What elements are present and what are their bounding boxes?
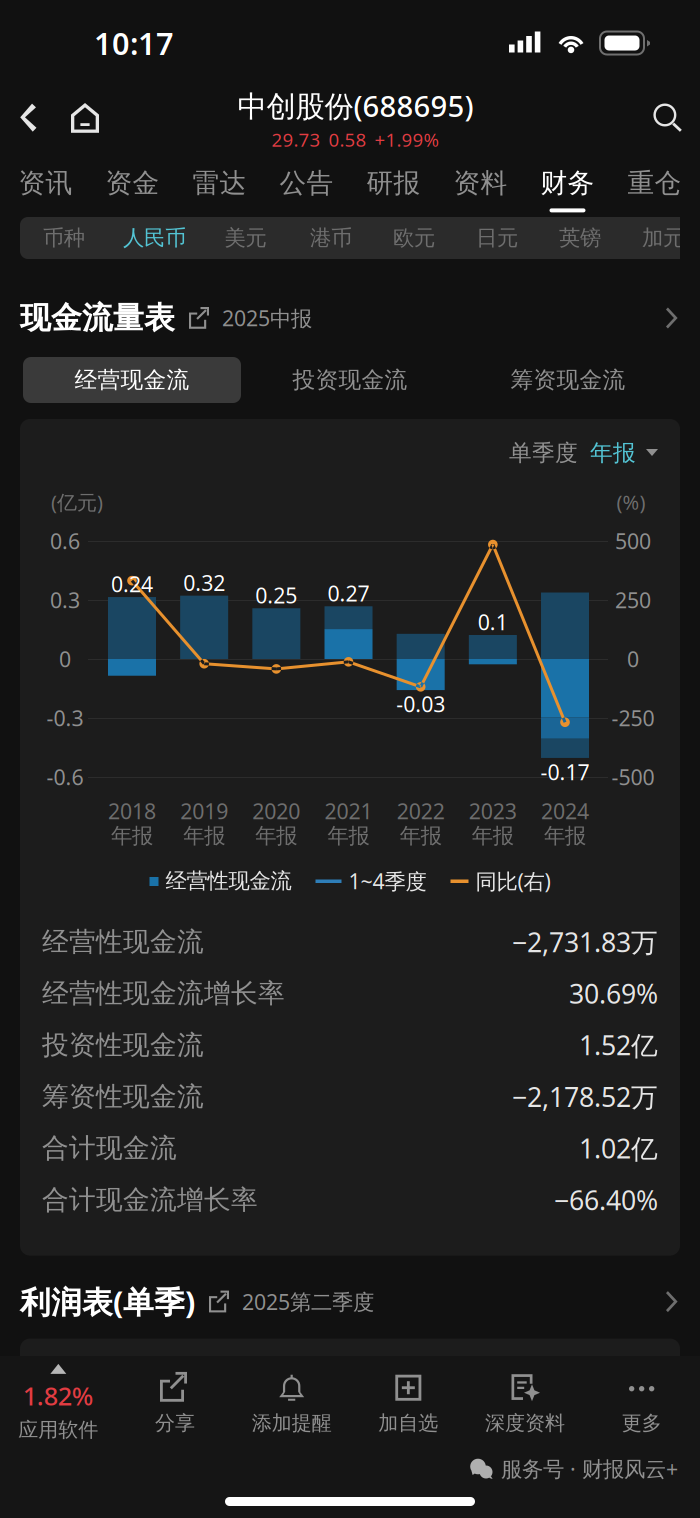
staticText: 经营性现金流: [165, 868, 291, 894]
staticText: 年报: [590, 439, 636, 467]
staticText: 年报: [400, 823, 442, 849]
staticText: 英镑: [559, 225, 601, 251]
button[interactable]: 利润表(单季): [0, 1274, 700, 1330]
staticText: 投资现金流: [292, 366, 407, 394]
staticText: 投资性现金流: [42, 1029, 204, 1061]
staticText: 1.82%: [23, 1379, 94, 1412]
staticText: -0.03: [396, 690, 445, 718]
button[interactable]: 深度资料: [467, 1360, 583, 1446]
staticText: 港币: [310, 225, 352, 251]
button[interactable]: Home: [58, 86, 112, 150]
button[interactable]: Back: [0, 86, 58, 150]
staticText: 服务号 · 财报风云+: [501, 1454, 678, 1483]
staticText: -0.6: [46, 763, 83, 791]
staticText: 人民币: [123, 225, 186, 251]
button[interactable]: 日元: [455, 217, 538, 259]
button[interactable]: 资讯: [2, 150, 89, 217]
staticText: −66.40%: [554, 1182, 658, 1217]
staticText: 0.27: [327, 579, 369, 607]
staticText: -0.3: [46, 704, 83, 732]
button[interactable]: 人民币: [107, 217, 201, 259]
button[interactable]: 港币: [289, 217, 372, 259]
button[interactable]: 加元: [621, 217, 700, 259]
staticText: 500: [615, 527, 651, 555]
staticText: 2025中报: [222, 304, 312, 332]
button[interactable]: 更多: [583, 1360, 700, 1446]
staticText: 0.25: [255, 581, 297, 609]
staticText: 29.73: [271, 127, 320, 152]
button[interactable]: Search: [635, 86, 700, 150]
button[interactable]: 分享: [117, 1360, 233, 1446]
button[interactable]: 经营现金流: [23, 357, 241, 403]
button[interactable]: 加自选: [350, 1360, 467, 1446]
staticText: 美元: [224, 225, 266, 251]
staticText: 年报: [472, 823, 514, 849]
staticText: 添加提醒: [252, 1411, 332, 1435]
button[interactable]: 投资现金流: [241, 357, 459, 403]
staticText: 2021: [324, 797, 372, 825]
staticText: 加自选: [378, 1411, 438, 1435]
staticText: 2020: [252, 797, 300, 825]
staticText: 利润表(单季): [20, 1281, 195, 1322]
staticText: 0: [627, 645, 639, 673]
staticText: 中创股份(688695): [237, 86, 473, 125]
staticText: 0.24: [111, 570, 153, 598]
staticText: 0: [59, 645, 71, 673]
staticText: 年报: [327, 823, 369, 849]
staticText: 2025第二季度: [242, 1287, 374, 1316]
button[interactable]: 添加提醒: [233, 1360, 350, 1446]
button[interactable]: 重仓: [611, 150, 698, 217]
staticText: 2023: [469, 797, 517, 825]
staticText: 年报: [111, 823, 153, 849]
button[interactable]: 1.82%: [0, 1360, 117, 1446]
staticText: 更多: [622, 1411, 662, 1435]
staticText: 深度资料: [485, 1411, 565, 1435]
staticText: 合计现金流: [42, 1132, 177, 1165]
staticText: 0.58: [328, 127, 366, 152]
staticText: 财务: [540, 167, 594, 199]
staticText: −2,731.83万: [512, 924, 658, 959]
staticText: 0.3: [50, 586, 80, 614]
staticText: 单季度: [509, 439, 578, 467]
staticText: 日元: [476, 225, 518, 251]
button[interactable]: 资金: [89, 150, 176, 217]
button[interactable]: 财务: [524, 150, 611, 217]
button[interactable]: 英镑: [538, 217, 621, 259]
staticText: 筹资现金流: [510, 366, 625, 394]
staticText: 雷达: [192, 167, 246, 199]
button[interactable]: 现金流量表: [0, 290, 700, 346]
staticText: 应用软件: [18, 1417, 98, 1442]
staticText: 合计现金流增长率: [42, 1183, 258, 1216]
staticText: 0.1: [478, 608, 508, 636]
staticText: 10:17: [94, 23, 174, 63]
staticText: 1~4季度: [348, 867, 426, 895]
staticText: (亿元): [51, 489, 103, 515]
staticText: 经营性现金流: [42, 925, 204, 958]
staticText: 同比(右): [475, 867, 550, 895]
staticText: 2024: [541, 797, 589, 825]
staticText: 30.69%: [569, 976, 658, 1011]
staticText: −2,178.52万: [512, 1079, 658, 1114]
staticText: -0.17: [540, 758, 589, 786]
button[interactable]: 美元: [201, 217, 289, 259]
button[interactable]: 欧元: [372, 217, 455, 259]
staticText: 分享: [155, 1411, 195, 1435]
button[interactable]: 公告: [263, 150, 350, 217]
staticText: 币种: [43, 225, 85, 251]
staticText: 经营现金流: [74, 366, 189, 394]
staticText: 筹资性现金流: [42, 1080, 204, 1113]
staticText: 0.32: [183, 568, 225, 597]
staticText: 现金流量表: [20, 299, 175, 337]
button[interactable]: 筹资现金流: [459, 357, 677, 403]
staticText: 研报: [366, 167, 420, 199]
staticText: 0.6: [50, 527, 80, 555]
button[interactable]: 币种: [20, 217, 107, 259]
staticText: (%): [616, 489, 645, 515]
staticText: 资料: [453, 167, 507, 199]
button[interactable]: 雷达: [176, 150, 263, 217]
staticText: -250: [611, 704, 654, 732]
staticText: 欧元: [393, 225, 435, 251]
button[interactable]: 研报: [350, 150, 437, 217]
staticText: 重仓: [627, 167, 681, 199]
button[interactable]: 资料: [437, 150, 524, 217]
